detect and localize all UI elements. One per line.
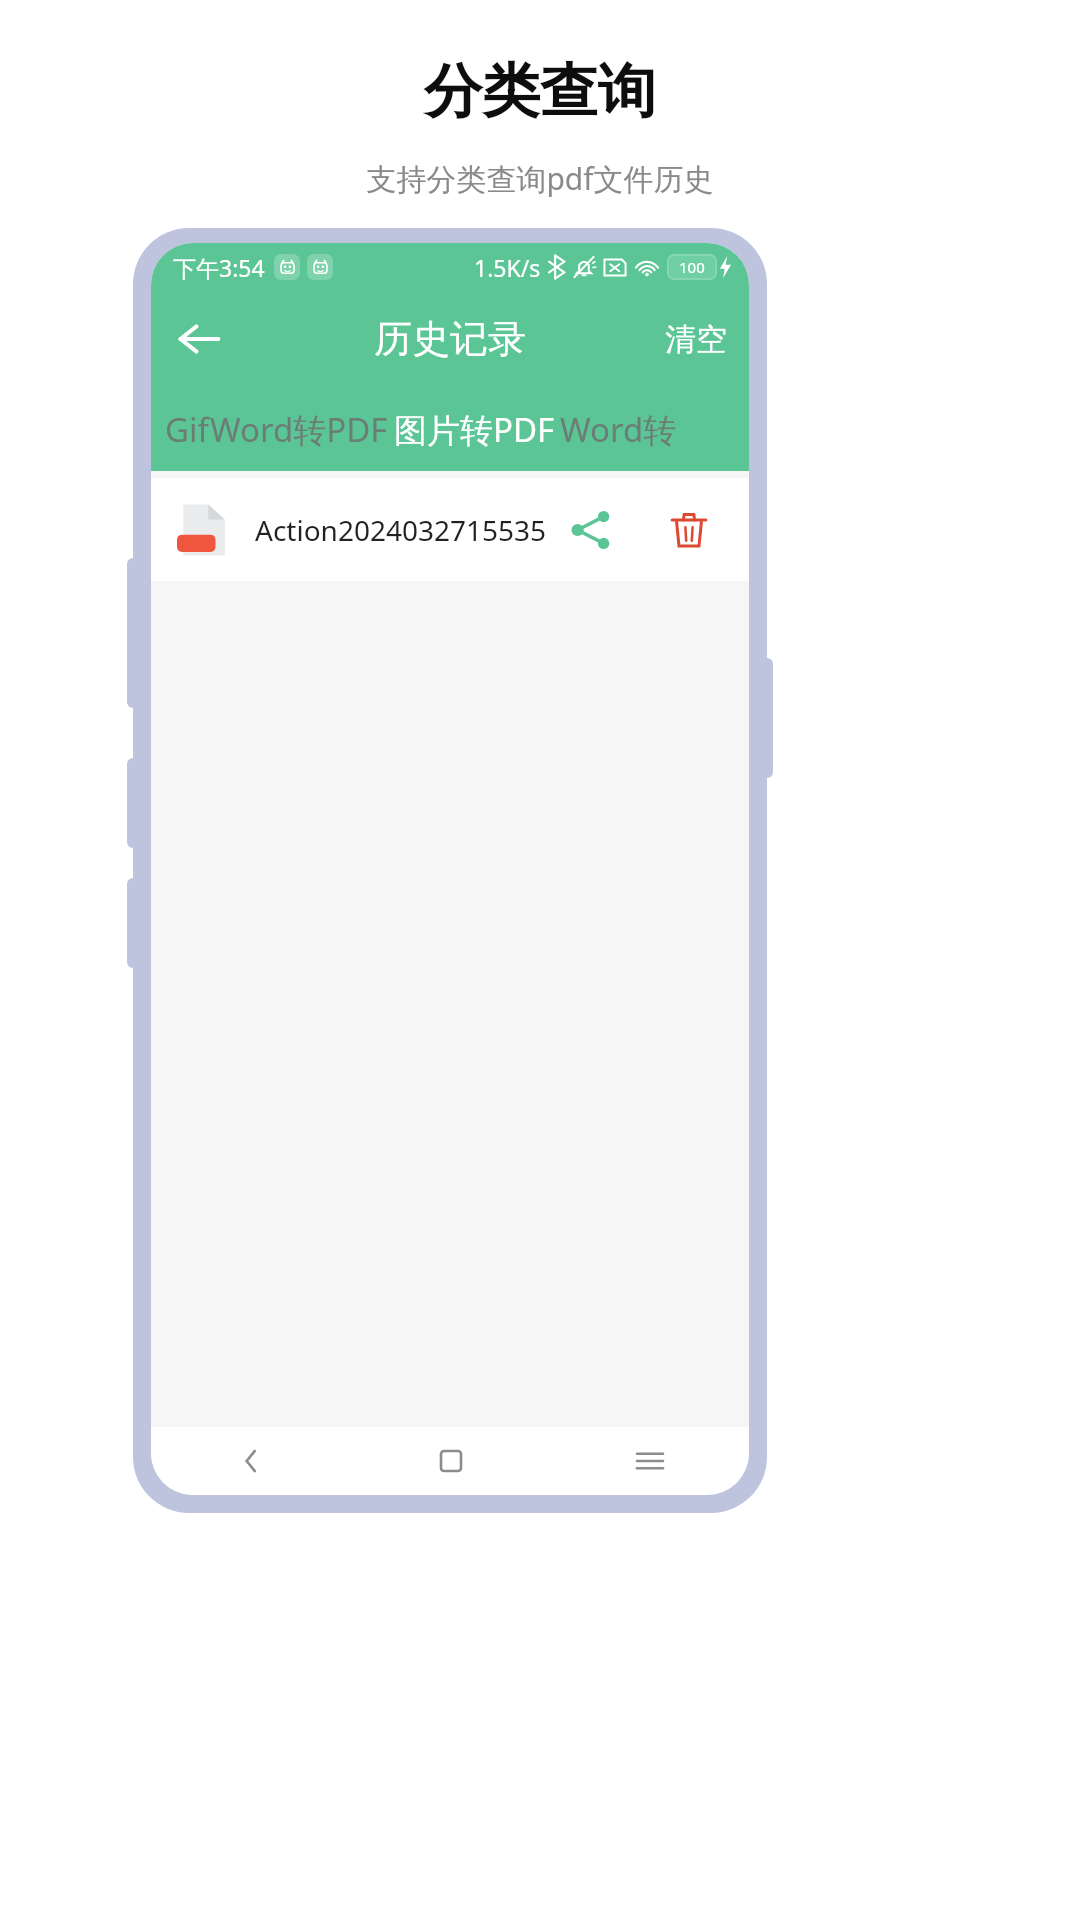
button[interactable]: Gif — [151, 387, 209, 471]
button[interactable]: 清空 — [657, 310, 735, 369]
staticText: Word转Html — [560, 407, 749, 452]
button[interactable]: 删除 — [651, 492, 727, 568]
button[interactable]: 图片转PDF — [389, 387, 560, 471]
staticText: Action202403271553531146.pdf — [255, 511, 553, 549]
button[interactable]: Word转Html — [560, 387, 749, 471]
staticText: 支持分类查询pdf文件历史 — [0, 158, 1080, 199]
button[interactable]: Word转PDF — [209, 387, 389, 471]
button[interactable]: 主页 — [351, 1427, 550, 1495]
staticText: 历史记录 — [374, 315, 526, 363]
staticText: Gif — [165, 407, 209, 452]
staticText: 图片转PDF — [394, 407, 555, 452]
staticText: 100 — [679, 257, 705, 277]
button[interactable]: 最近任务 — [550, 1427, 749, 1495]
staticText: 下午3:54 — [173, 252, 265, 283]
staticText: 清空 — [665, 320, 727, 359]
button[interactable]: Action202403271553531146.pdf — [151, 478, 749, 581]
button[interactable]: 返回 — [151, 1427, 351, 1495]
staticText: 分类查询 — [0, 55, 1080, 128]
staticText: 1.5K/s — [474, 252, 541, 283]
button[interactable]: 返回 — [159, 299, 239, 379]
button[interactable]: 分享 — [553, 492, 629, 568]
staticText: Word转PDF — [210, 407, 388, 452]
